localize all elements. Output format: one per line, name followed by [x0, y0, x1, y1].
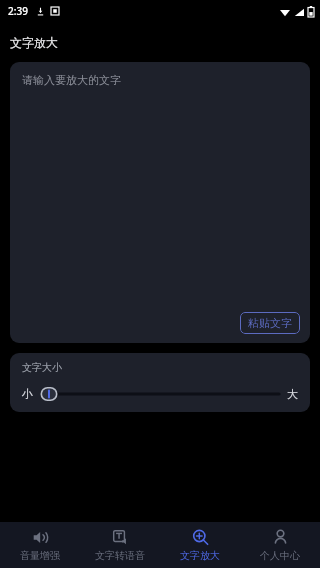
- button[interactable]: 音量增强: [0, 522, 80, 568]
- button[interactable]: 文字转语音: [80, 522, 160, 568]
- button[interactable]: 个人中心: [240, 522, 320, 568]
- staticText: 文字大小: [22, 361, 62, 374]
- button[interactable]: [39, 385, 281, 403]
- staticText: 请输入要放大的文字: [22, 73, 121, 87]
- staticText: 音量增强: [20, 549, 60, 562]
- staticText: 小: [22, 387, 33, 401]
- button[interactable]: 粘贴文字: [240, 312, 300, 334]
- staticText: 文字放大: [10, 35, 58, 50]
- staticText: 粘贴文字: [248, 316, 292, 330]
- staticText: 大: [287, 387, 298, 401]
- staticText: 文字放大: [180, 549, 220, 562]
- button[interactable]: 文字放大: [160, 522, 240, 568]
- button[interactable]: 请输入要放大的文字: [10, 62, 310, 343]
- staticText: 2:39: [8, 4, 28, 18]
- staticText: 文字转语音: [95, 549, 145, 562]
- staticText: 个人中心: [260, 549, 300, 562]
